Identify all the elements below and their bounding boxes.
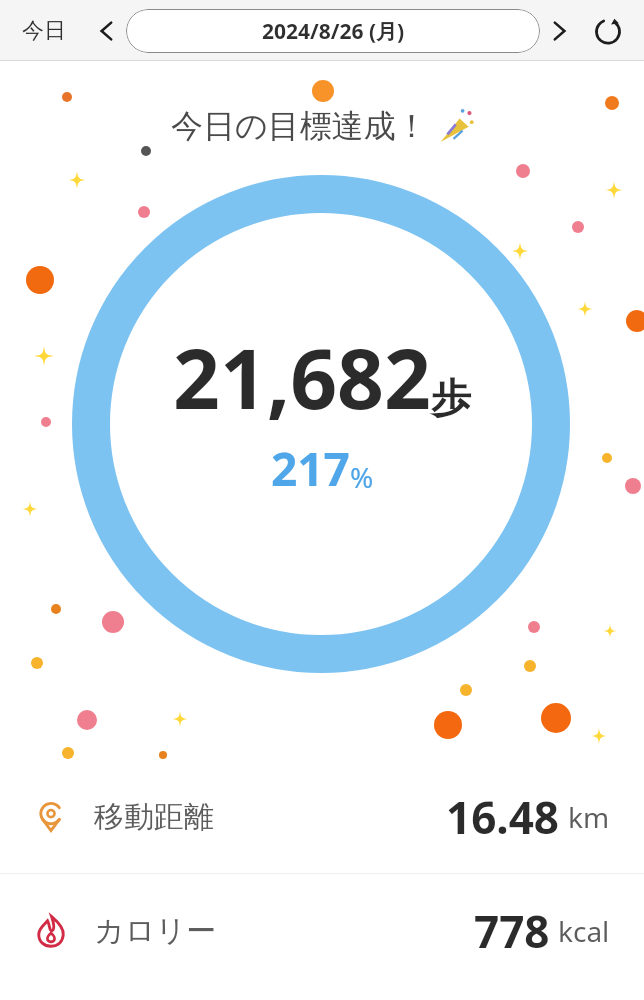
staticText: 778 xyxy=(474,901,550,961)
staticText: 今日 xyxy=(22,17,66,45)
button[interactable]: 今日 xyxy=(14,11,74,51)
staticText: 移動距離 xyxy=(94,798,214,836)
button[interactable]: Refresh xyxy=(586,9,630,53)
button[interactable]: Next day xyxy=(540,12,578,50)
button[interactable]: Previous day xyxy=(88,12,126,50)
button[interactable]: 移動距離 xyxy=(0,760,644,873)
button[interactable]: カロリー xyxy=(0,874,644,987)
staticText: 21,682 xyxy=(173,321,431,433)
staticText: % xyxy=(350,458,374,496)
staticText: 217 xyxy=(271,437,350,500)
staticText: 歩 xyxy=(431,373,471,423)
staticText: 2024/8/26 (月) xyxy=(262,17,405,46)
button[interactable]: 2024/8/26 (月) xyxy=(126,9,540,53)
staticText: km xyxy=(568,798,610,836)
staticText: kcal xyxy=(558,912,610,950)
staticText: 16.48 xyxy=(446,787,560,847)
staticText: カロリー xyxy=(94,912,217,950)
staticText: 今日の目標達成！ xyxy=(171,106,428,146)
